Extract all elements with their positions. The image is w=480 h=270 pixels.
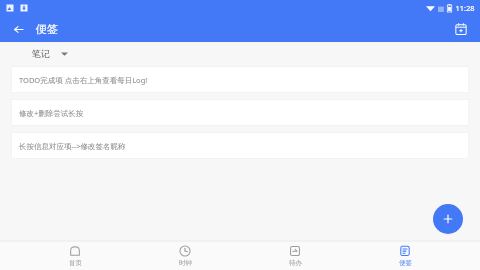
button[interactable]: Daily log calendar	[450, 18, 472, 40]
staticText: 便签	[399, 259, 412, 267]
staticText: 笔记	[32, 48, 50, 59]
button[interactable]: 长按信息对应项-->修改签名昵称	[11, 132, 469, 159]
button[interactable]: 待办	[260, 241, 330, 270]
button[interactable]: 便签	[370, 241, 440, 270]
staticText: 11:28	[455, 3, 475, 13]
button[interactable]: Add note	[433, 204, 463, 234]
button[interactable]: 时钟	[150, 241, 220, 270]
button[interactable]: 笔记	[28, 45, 72, 62]
staticText: 时钟	[179, 259, 192, 267]
staticText: 首页	[69, 259, 82, 267]
button[interactable]: 修改+删除尝试长按	[11, 99, 469, 126]
staticText: 便签	[36, 22, 58, 36]
button[interactable]: 首页	[40, 241, 110, 270]
staticText: 修改+删除尝试长按	[19, 108, 84, 118]
button[interactable]: Back	[7, 18, 29, 40]
staticText: TODO完成项 点击右上角查看每日Log!	[19, 75, 148, 85]
staticText: 待办	[289, 259, 302, 267]
staticText: 长按信息对应项-->修改签名昵称	[19, 141, 126, 151]
button[interactable]: TODO完成项 点击右上角查看每日Log!	[11, 66, 469, 93]
